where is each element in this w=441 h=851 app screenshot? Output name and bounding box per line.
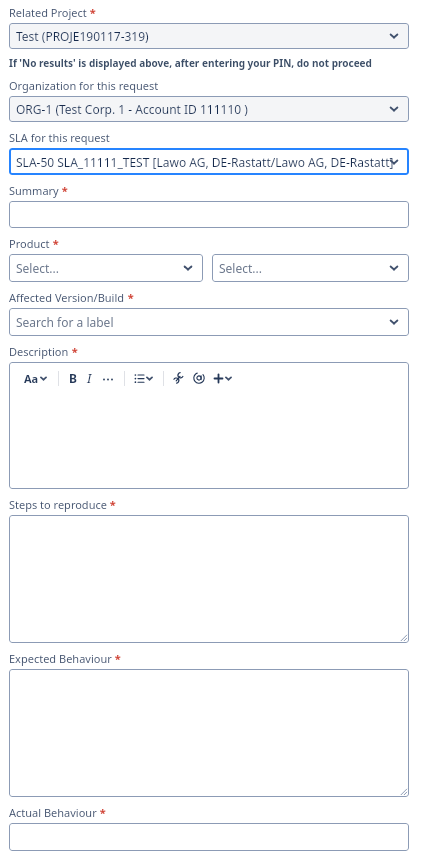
staticText: Actual Behaviour	[9, 805, 97, 820]
staticText: *	[87, 5, 96, 20]
staticText: If 'No results' is displayed above, afte…	[9, 56, 372, 70]
staticText: Search for a label	[16, 314, 114, 330]
button[interactable]: Select...	[9, 254, 203, 282]
button[interactable]: Mention	[191, 372, 207, 384]
staticText: I	[87, 370, 92, 386]
button[interactable]: Lists	[132, 373, 156, 384]
staticText: SLA for this request	[9, 130, 110, 145]
staticText: Product	[9, 236, 50, 251]
button[interactable]	[9, 823, 409, 851]
staticText: Affected Version/Build	[9, 290, 125, 305]
staticText: *	[69, 344, 78, 359]
button[interactable]: Text style	[21, 369, 51, 388]
button[interactable]: SLA-50 SLA_11111_TEST [Lawo AG, DE-Rasta…	[9, 148, 409, 175]
staticText: *	[97, 805, 106, 820]
staticText: Summary	[9, 183, 59, 198]
staticText: Select...	[219, 260, 262, 276]
staticText: *	[59, 183, 68, 198]
button[interactable]: ORG-1 (Test Corp. 1 - Account ID 111110 …	[9, 96, 409, 122]
staticText: Select...	[16, 260, 59, 276]
staticText: *	[125, 290, 134, 305]
staticText: B	[69, 370, 77, 386]
button[interactable]: Bold	[66, 370, 80, 386]
staticText: Description	[9, 344, 69, 359]
button[interactable]	[9, 515, 409, 643]
button[interactable]: Text style	[9, 362, 409, 489]
staticText: Expected Behaviour	[9, 651, 112, 666]
staticText: *	[50, 236, 59, 251]
staticText: Steps to reproduce	[9, 497, 107, 512]
button[interactable]	[9, 201, 409, 228]
staticText: Organization for this request	[9, 78, 159, 93]
button[interactable]: Italic	[84, 370, 95, 386]
staticText: ORG-1 (Test Corp. 1 - Account ID 111110 …	[16, 101, 248, 117]
button[interactable]	[9, 669, 409, 797]
staticText: Test (PROJE190117-319)	[16, 28, 149, 44]
button[interactable]: Insert more	[211, 373, 235, 384]
button[interactable]: Search for a label	[9, 308, 409, 336]
button[interactable]: Insert link	[171, 372, 187, 384]
staticText: Related Project	[9, 5, 87, 20]
staticText: *	[112, 651, 121, 666]
button[interactable]: More formatting	[99, 372, 117, 384]
button[interactable]: Test (PROJE190117-319)	[9, 23, 409, 49]
staticText: Aa	[24, 371, 39, 386]
button[interactable]: Select...	[212, 254, 409, 282]
staticText: *	[107, 497, 116, 512]
staticText: SLA-50 SLA_11111_TEST [Lawo AG, DE-Rasta…	[16, 154, 394, 170]
